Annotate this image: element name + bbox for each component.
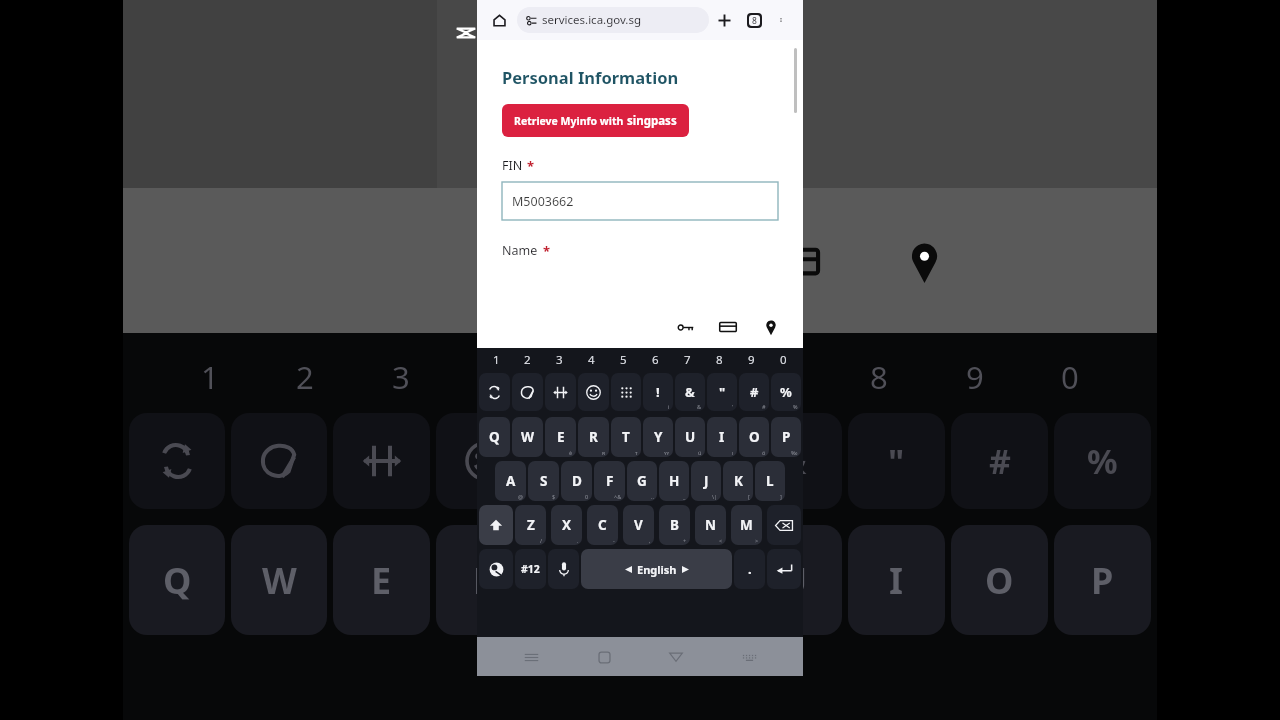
button[interactable]: O (739, 417, 769, 457)
staticText: 8 (716, 352, 723, 368)
staticText: * (527, 157, 535, 175)
button[interactable]: 3 (543, 348, 575, 371)
button[interactable]: L (755, 461, 785, 501)
button[interactable]: N (695, 505, 726, 545)
button[interactable]: J (691, 461, 721, 501)
staticText: " (888, 438, 905, 484)
button[interactable]: G (627, 461, 657, 501)
button[interactable]: W (512, 417, 543, 457)
button[interactable]: 5 (607, 348, 639, 371)
button[interactable]: Change language (479, 549, 513, 589)
staticText: V (634, 516, 643, 534)
button[interactable]: Enter (767, 549, 801, 589)
staticText: 1 (201, 356, 219, 398)
staticText: < (719, 537, 723, 544)
button[interactable]: K (723, 461, 753, 501)
staticText: [ (748, 493, 750, 500)
staticText: 1 (493, 352, 500, 368)
staticText: ! (686, 438, 696, 484)
staticText: W (521, 428, 535, 446)
button[interactable]: 0 (767, 348, 799, 371)
button[interactable]: Recents (512, 638, 550, 676)
staticText: 5 (583, 356, 601, 398)
button[interactable]: Z (515, 505, 546, 545)
button[interactable]: U (675, 417, 705, 457)
staticText: 4 (488, 356, 506, 398)
button[interactable]: Passwords (667, 309, 703, 345)
button[interactable]: ! (643, 373, 673, 411)
staticText: S (540, 472, 548, 490)
button[interactable]: Payment methods (710, 309, 746, 345)
button[interactable]: A (495, 461, 526, 501)
button[interactable]: 2 (512, 348, 543, 371)
button[interactable]: Switch (479, 373, 510, 411)
button[interactable]: % (771, 373, 801, 411)
button[interactable]: services.ica.gov.sg (526, 7, 709, 33)
staticText: ı (732, 449, 734, 456)
button[interactable]: B (659, 505, 690, 545)
button[interactable]: Home (487, 8, 511, 32)
button[interactable]: Shift (479, 505, 513, 545)
button[interactable]: Stickers (512, 373, 543, 411)
staticText: I (719, 428, 725, 446)
button[interactable]: English (581, 549, 732, 589)
button[interactable]: R (578, 417, 609, 457)
button[interactable]: . (734, 549, 765, 589)
button[interactable]: 1 (481, 348, 512, 371)
button[interactable]: & (675, 373, 705, 411)
staticText: U (685, 428, 696, 446)
button[interactable]: 4 (575, 348, 607, 371)
staticText: J (704, 472, 709, 490)
button[interactable]: #12 (515, 549, 546, 589)
button[interactable]: I (707, 417, 737, 457)
staticText: 2 (524, 352, 531, 368)
staticText: A (506, 472, 516, 490)
button[interactable]: F (594, 461, 625, 501)
button[interactable]: 9 (735, 348, 767, 371)
button[interactable]: Clipboard (545, 373, 576, 411)
staticText: 3 (392, 356, 410, 398)
button[interactable]: " (707, 373, 737, 411)
button[interactable]: 8 (703, 348, 735, 371)
button[interactable]: Hide keyboard (730, 638, 768, 676)
button[interactable]: P (771, 417, 801, 457)
staticText: ü (698, 449, 702, 456)
button[interactable]: H (659, 461, 689, 501)
button[interactable]: Q (479, 417, 510, 457)
staticText: , (649, 537, 651, 544)
button[interactable]: Y (643, 417, 673, 457)
button[interactable]: E (545, 417, 576, 457)
button[interactable]: M5003662 (502, 182, 778, 220)
button[interactable]: Back (657, 638, 695, 676)
button[interactable]: Symbols (611, 373, 641, 411)
staticText: C (598, 516, 607, 534)
staticText: è (569, 449, 573, 456)
staticText: U (780, 556, 808, 605)
button[interactable]: 7 (671, 348, 703, 371)
button[interactable]: C (587, 505, 618, 545)
staticText: % (780, 383, 792, 401)
staticText: Name (502, 242, 538, 259)
button[interactable]: # (739, 373, 769, 411)
button[interactable]: 6 (639, 348, 671, 371)
button[interactable]: Emoji (578, 373, 609, 411)
button[interactable]: T (611, 417, 641, 457)
button[interactable]: Home (585, 638, 623, 676)
button[interactable]: New tab (709, 5, 739, 35)
button[interactable]: Voice input (548, 549, 579, 589)
button[interactable]: X (551, 505, 582, 545)
button[interactable]: Retrieve Myinfo with (514, 104, 677, 137)
button[interactable]: D (561, 461, 592, 501)
button[interactable]: Addresses (753, 309, 789, 345)
button[interactable]: More options (769, 8, 793, 32)
staticText: F (606, 472, 614, 490)
button[interactable]: V (623, 505, 654, 545)
staticText: E (371, 556, 392, 605)
button[interactable]: Tabs, 8 open (739, 5, 769, 35)
staticText: P (782, 428, 791, 446)
staticText: .. (651, 493, 654, 500)
button[interactable]: M (731, 505, 762, 545)
button[interactable]: Backspace (767, 505, 801, 545)
button[interactable]: S (528, 461, 559, 501)
staticText: R (589, 428, 598, 446)
